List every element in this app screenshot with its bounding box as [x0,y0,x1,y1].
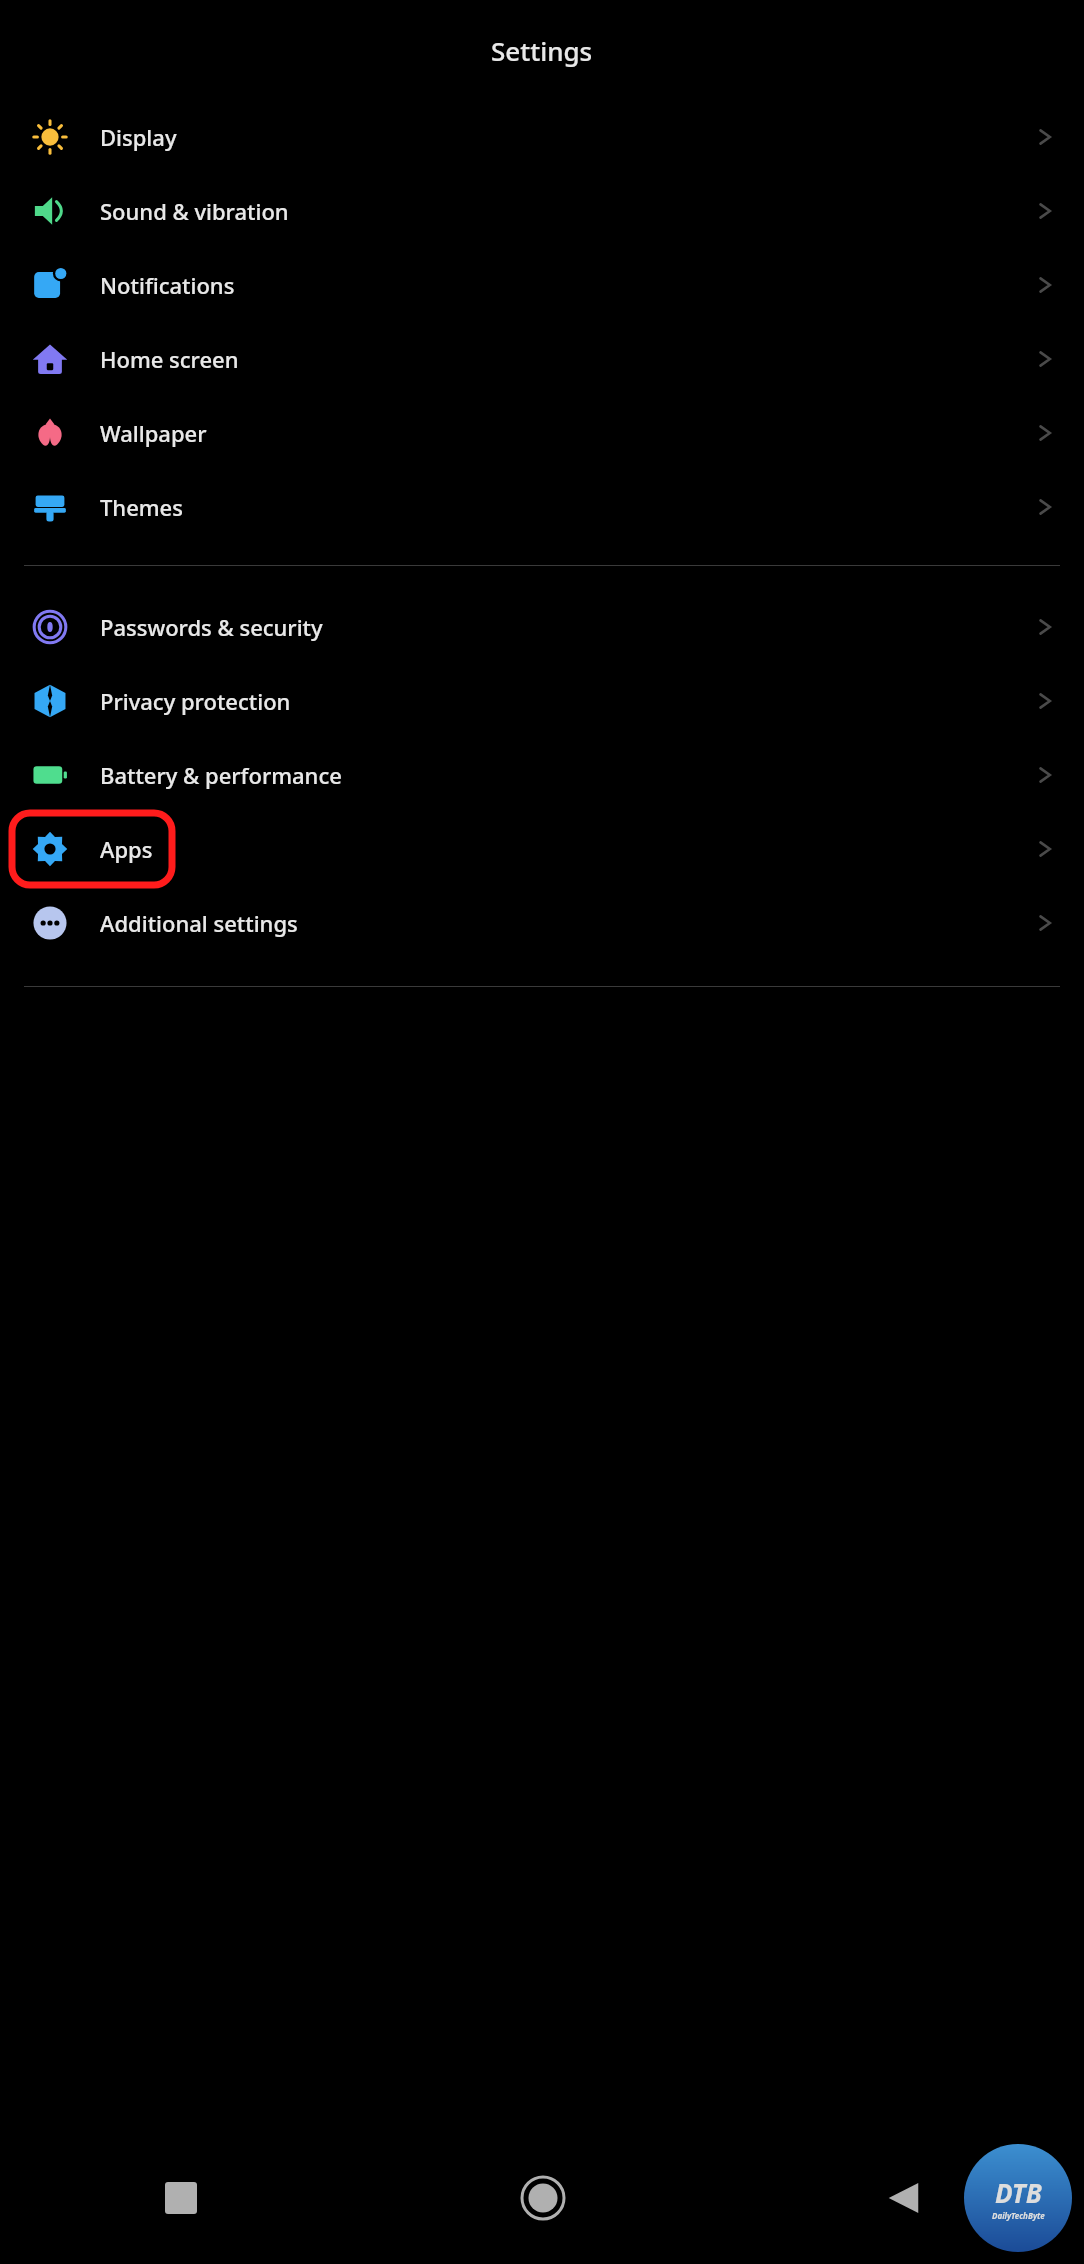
button[interactable]: Back [723,2132,1084,2264]
button[interactable]: Recent apps [0,2132,362,2264]
button[interactable]: Notifications [0,248,1084,322]
button[interactable]: Battery & performance [0,738,1084,812]
button[interactable]: Display [0,100,1084,174]
button[interactable]: Home [362,2132,723,2264]
staticText: Additional settings [100,908,298,938]
button[interactable]: Wallpaper [0,396,1084,470]
staticText: Themes [100,492,183,522]
staticText: DTB [995,2175,1042,2210]
staticText: DailyTechByte [992,2210,1045,2221]
button[interactable]: Themes [0,470,1084,544]
staticText: Apps [100,834,153,864]
button[interactable]: Additional settings [0,886,1084,960]
staticText: Battery & performance [100,760,342,790]
staticText: Passwords & security [100,612,323,642]
button[interactable]: Passwords & security [0,590,1084,664]
button[interactable]: Sound & vibration [0,174,1084,248]
button[interactable]: Apps [0,812,1084,886]
staticText: Notifications [100,270,235,300]
staticText: Wallpaper [100,418,207,448]
staticText: Sound & vibration [100,196,289,226]
staticText: Privacy protection [100,686,291,716]
button[interactable]: Privacy protection [0,664,1084,738]
staticText: Settings [491,33,593,68]
staticText: Display [100,122,177,152]
staticText: Home screen [100,344,239,374]
button[interactable]: Home screen [0,322,1084,396]
